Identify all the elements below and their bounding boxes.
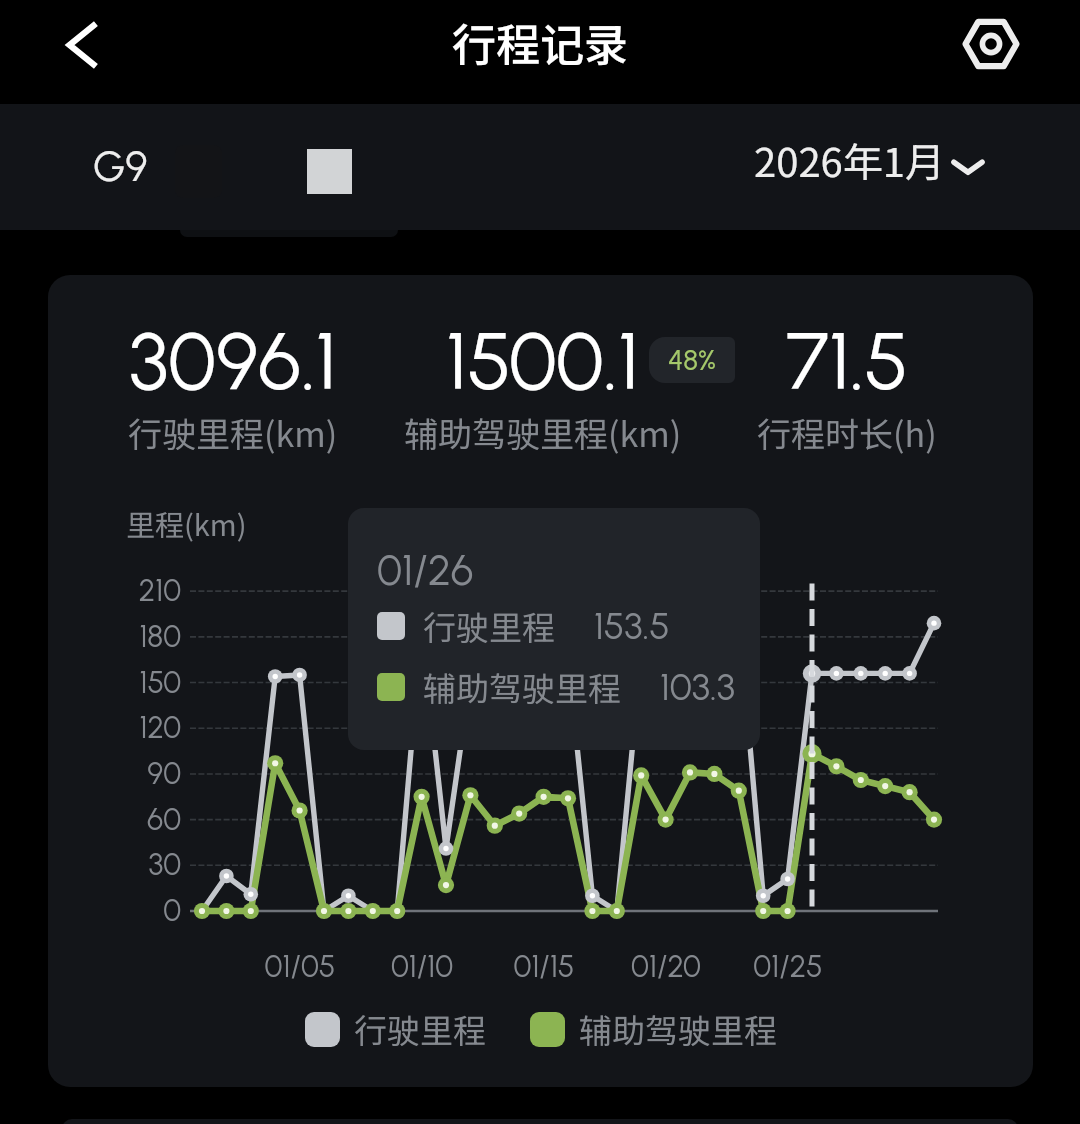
- staticText: 71.5: [786, 313, 909, 409]
- staticText: 辅助驾驶里程: [579, 1005, 777, 1053]
- staticText: 行程记录: [452, 10, 628, 74]
- staticText: 150: [68, 664, 181, 700]
- staticText: 210: [68, 572, 181, 608]
- staticText: 1500.1: [446, 313, 640, 409]
- staticText: 01/10: [347, 948, 497, 984]
- staticText: 01/26: [377, 545, 474, 595]
- button[interactable]: Settings: [948, 1, 1033, 86]
- staticText: 行驶里程(km): [128, 408, 338, 457]
- button[interactable]: 2026年1月: [754, 131, 990, 189]
- staticText: 01/25: [713, 948, 863, 984]
- staticText: 01/05: [225, 948, 375, 984]
- staticText: 30: [68, 846, 181, 882]
- staticText: 90: [68, 755, 181, 791]
- staticText: 行程时长(h): [757, 408, 937, 457]
- staticText: 120: [68, 709, 181, 745]
- staticText: 行驶里程: [354, 1005, 486, 1053]
- staticText: 60: [68, 801, 181, 837]
- button[interactable]: Back: [38, 2, 123, 87]
- staticText: 01/15: [469, 948, 619, 984]
- staticText: 48%: [668, 343, 716, 377]
- staticText: 辅助驾驶里程(km): [404, 408, 682, 457]
- staticText: 里程(km): [126, 502, 247, 544]
- staticText: 0: [68, 892, 181, 928]
- staticText: 153.5: [594, 604, 670, 648]
- staticText: 行驶里程: [423, 602, 555, 650]
- staticText: 180: [68, 618, 181, 654]
- staticText: 辅助驾驶里程: [423, 663, 621, 711]
- staticText: G9: [93, 141, 148, 191]
- staticText: 3096.1: [129, 313, 337, 409]
- staticText: 2026年1月: [754, 131, 945, 189]
- staticText: 103.3: [660, 665, 735, 709]
- staticText: 01/20: [591, 948, 741, 984]
